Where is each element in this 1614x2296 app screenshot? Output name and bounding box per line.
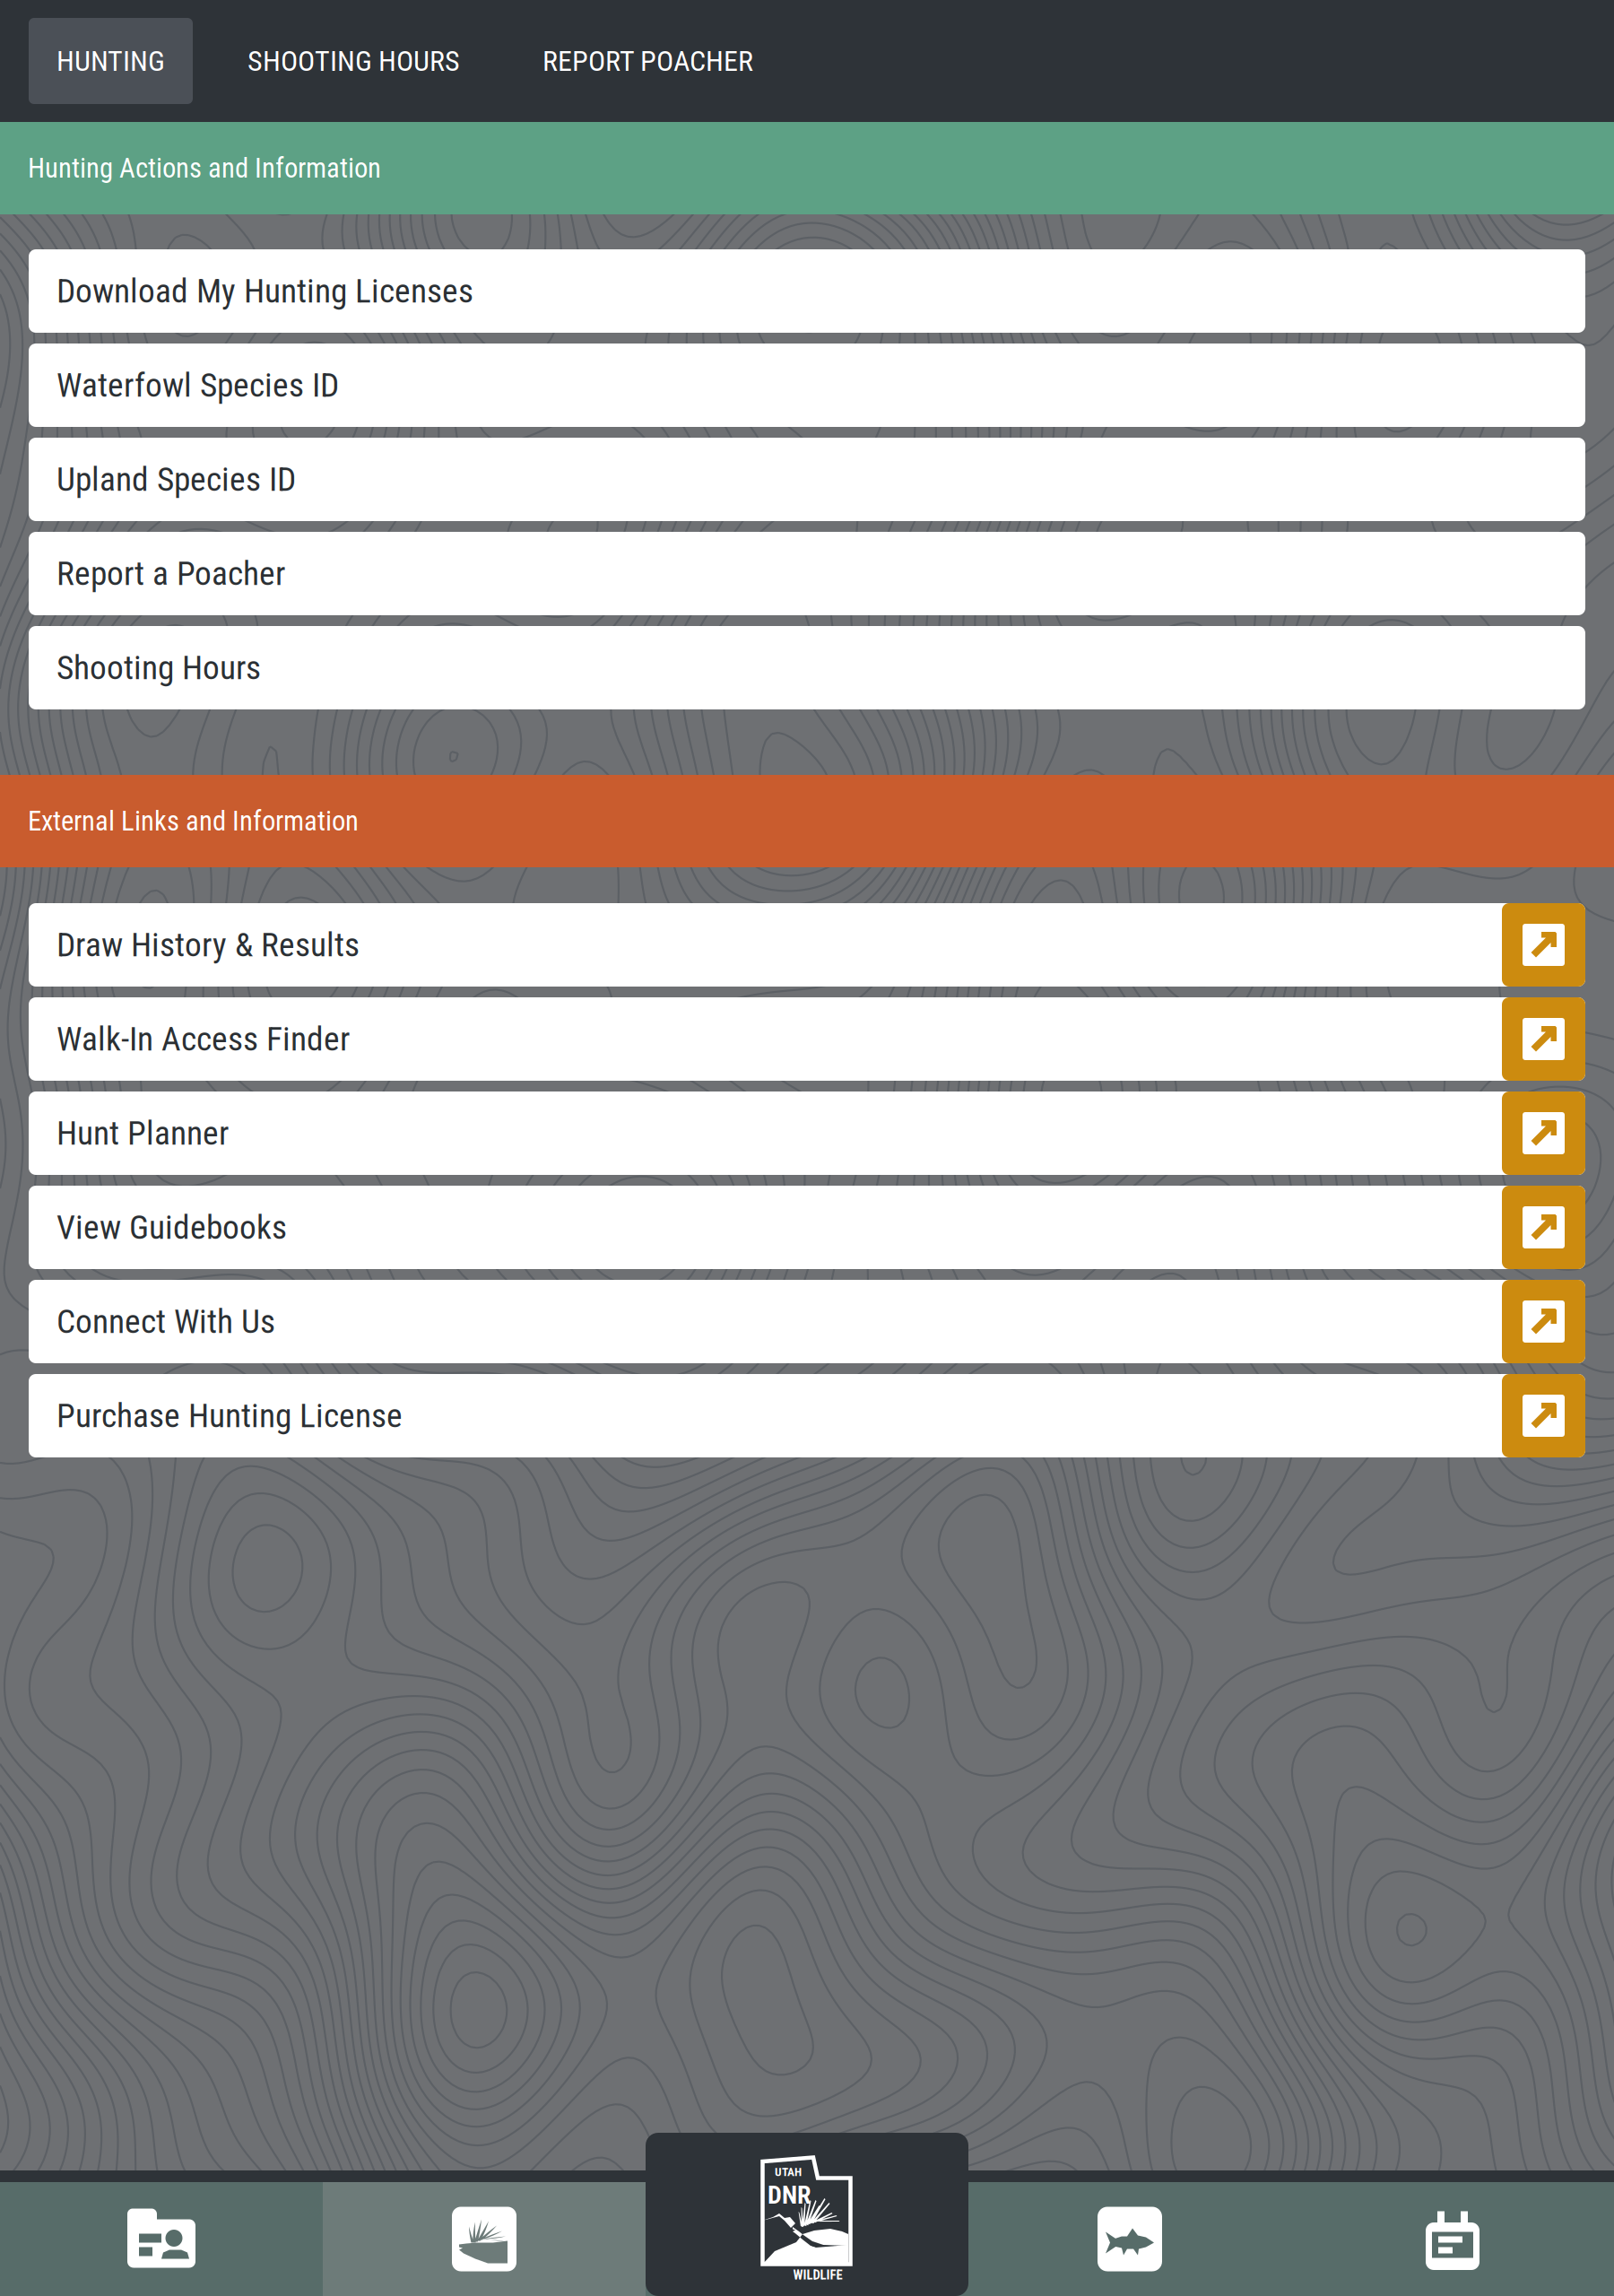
button[interactable]: Hunt Planner (29, 1091, 1585, 1175)
button[interactable]: Licenses (0, 2182, 323, 2296)
button[interactable]: Events (1291, 2182, 1614, 2296)
staticText: View Guidebooks (56, 1208, 287, 1247)
staticText: External Links and Information (28, 805, 359, 837)
staticText: Purchase Hunting License (56, 1396, 403, 1435)
button[interactable]: Utah DNR Wildlife (646, 2133, 968, 2296)
staticText: Connect With Us (56, 1302, 275, 1341)
button[interactable]: Shooting Hours (29, 626, 1585, 709)
button[interactable]: Draw History & Results (29, 903, 1585, 987)
staticText: SHOOTING HOURS (247, 44, 460, 78)
staticText: DNR (768, 2180, 811, 2210)
staticText: Report a Poacher (56, 554, 285, 593)
button[interactable]: Upland Species ID (29, 438, 1585, 521)
staticText: Hunting Actions and Information (28, 152, 381, 184)
button[interactable]: HUNTING (29, 18, 193, 104)
button[interactable]: Walk-In Access Finder (29, 997, 1585, 1081)
button[interactable]: Waterfowl Species ID (29, 344, 1585, 427)
button[interactable]: REPORT POACHER (515, 18, 781, 104)
button[interactable]: View Guidebooks (29, 1186, 1585, 1269)
button[interactable]: Connect With Us (29, 1280, 1585, 1363)
staticText: UTAH (775, 2165, 802, 2179)
button[interactable]: Download My Hunting Licenses (29, 249, 1585, 333)
staticText: Walk-In Access Finder (56, 1019, 350, 1059)
staticText: REPORT POACHER (542, 44, 753, 78)
staticText: Upland Species ID (56, 460, 296, 499)
button[interactable]: Hunting (323, 2182, 646, 2296)
staticText: Draw History & Results (56, 925, 360, 964)
staticText: Hunt Planner (56, 1114, 229, 1153)
button[interactable]: Report a Poacher (29, 532, 1585, 615)
button[interactable]: Fishing (968, 2182, 1291, 2296)
button[interactable]: SHOOTING HOURS (220, 18, 488, 104)
staticText: HUNTING (56, 44, 165, 78)
staticText: Shooting Hours (56, 648, 261, 687)
staticText: WILDLIFE (793, 2267, 842, 2283)
staticText: Waterfowl Species ID (56, 366, 339, 405)
button[interactable]: Purchase Hunting License (29, 1374, 1585, 1457)
staticText: Download My Hunting Licenses (56, 271, 473, 311)
